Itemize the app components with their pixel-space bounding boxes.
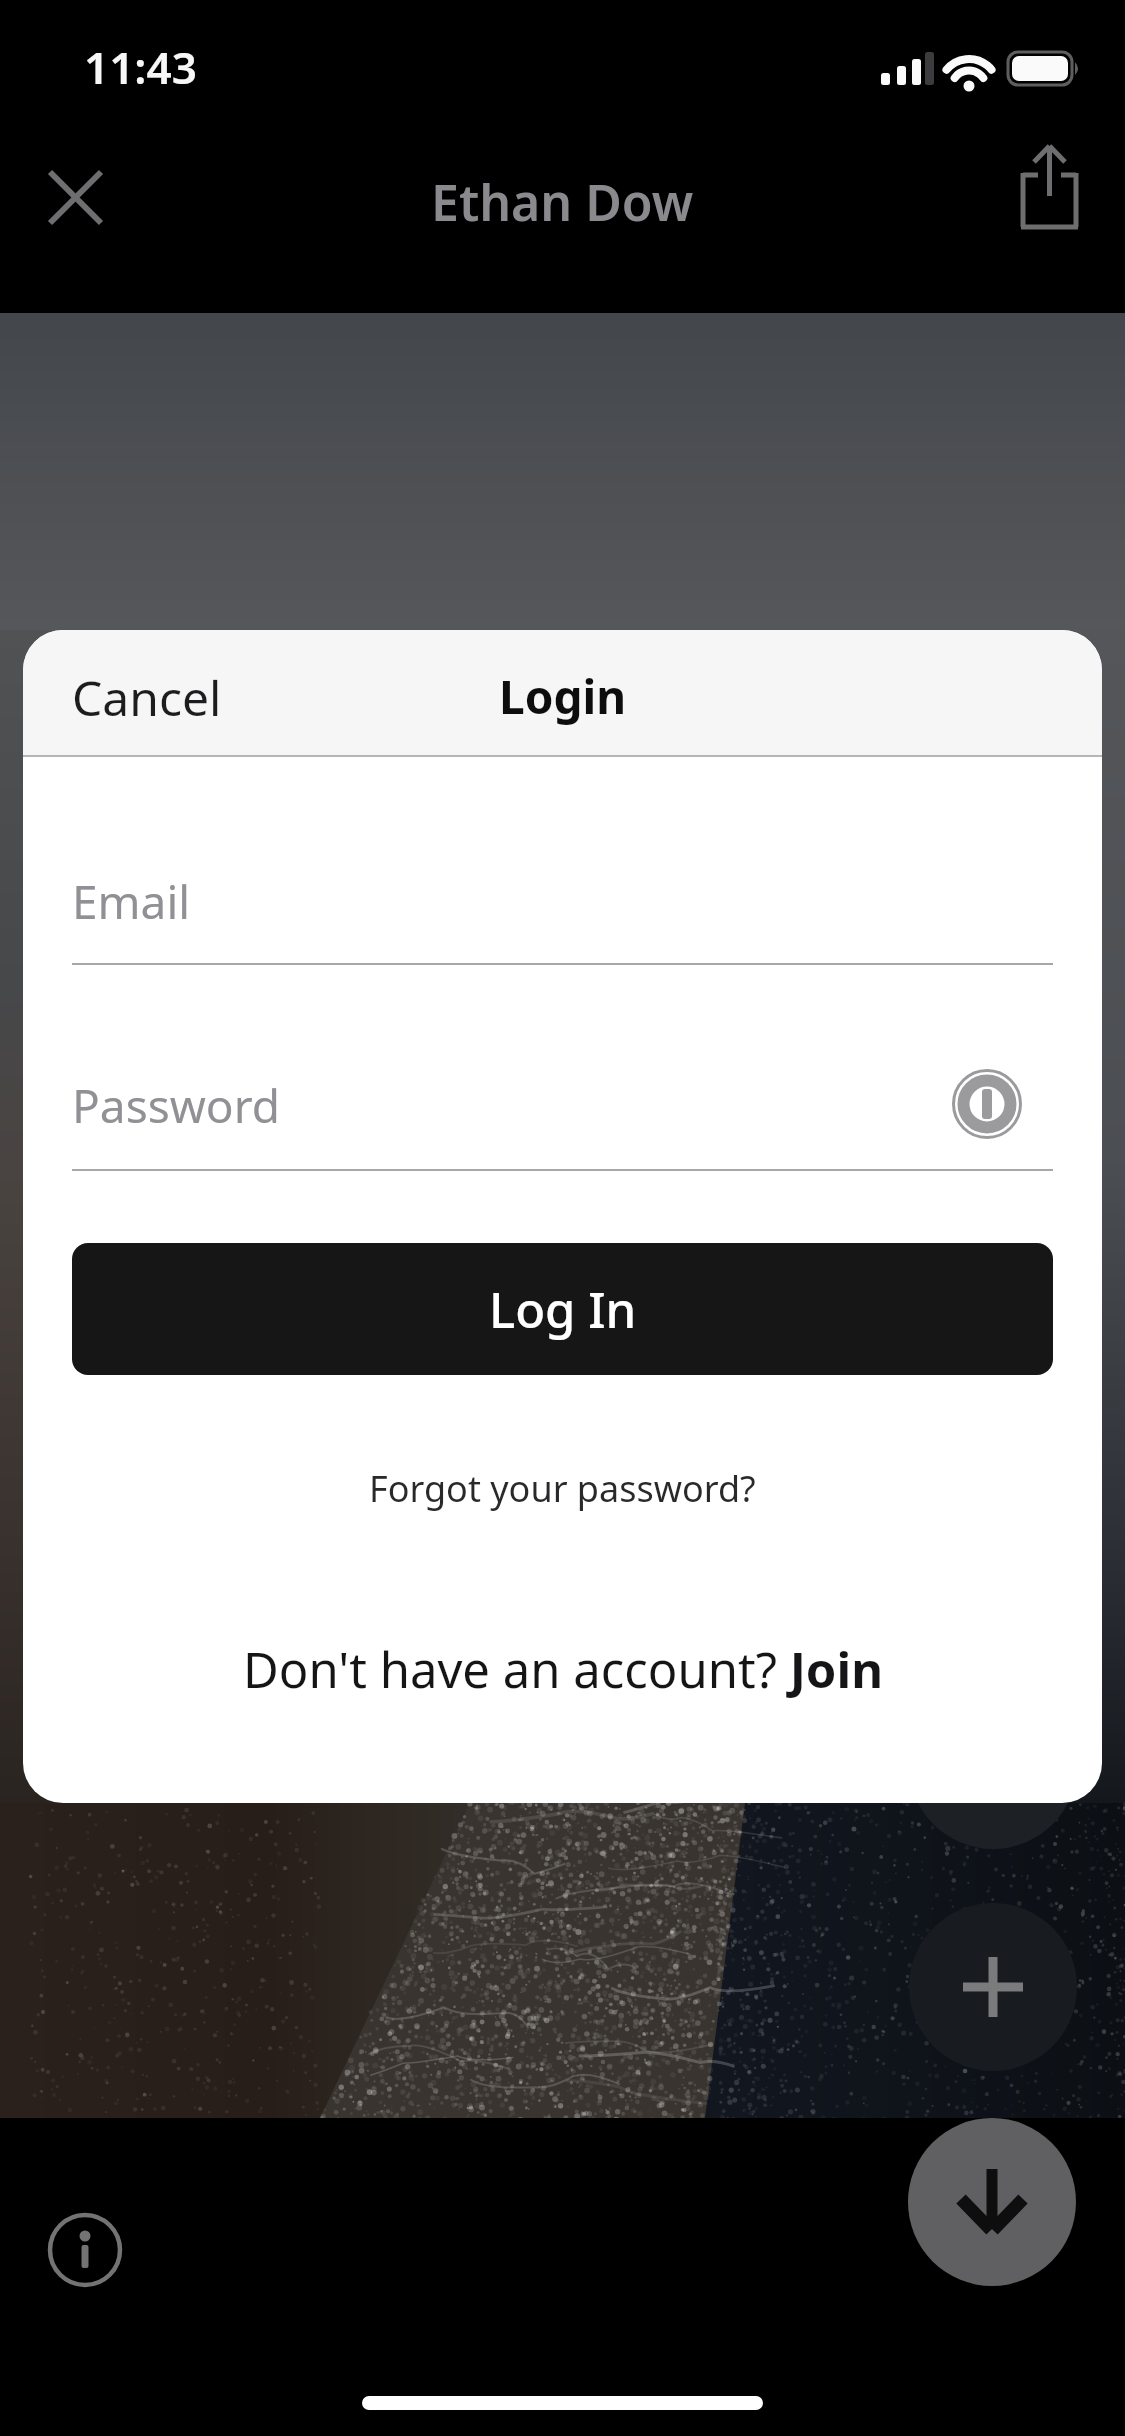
- button[interactable]: Don't have an account? Join: [243, 1636, 883, 1698]
- button[interactable]: [909, 1903, 1077, 2071]
- button[interactable]: Password: [72, 1045, 1053, 1165]
- button[interactable]: Forgot your password?: [369, 1464, 756, 1513]
- button[interactable]: Email: [72, 841, 1053, 961]
- button[interactable]: [47, 2212, 123, 2288]
- button[interactable]: Cancel: [72, 665, 222, 725]
- button[interactable]: [35, 157, 115, 237]
- button[interactable]: [908, 2118, 1076, 2286]
- staticText: Log In: [489, 1276, 637, 1343]
- button[interactable]: [1008, 140, 1093, 235]
- staticText: 11:43: [84, 37, 197, 97]
- staticText: Ethan Dow: [431, 168, 694, 228]
- staticText: Login: [499, 665, 627, 725]
- staticText: Email: [72, 870, 191, 933]
- button[interactable]: Log In: [72, 1243, 1053, 1375]
- button[interactable]: [952, 1069, 1022, 1139]
- staticText: Cancel: [72, 665, 222, 725]
- staticText: Password: [72, 1074, 281, 1137]
